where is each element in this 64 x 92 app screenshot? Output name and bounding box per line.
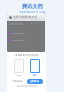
staticText: 立即导出: [30, 80, 40, 83]
staticText: PDF: [17, 74, 22, 77]
staticText: 全新升级版本正式: [13, 15, 37, 19]
button[interactable]: 稍后再说: [10, 79, 25, 84]
staticText: 导出后可以分享给好友: [17, 85, 37, 88]
staticText: 腾讯文档: [22, 3, 43, 10]
staticText: 稍后再说: [13, 80, 23, 83]
button[interactable]: 立即导出: [27, 79, 43, 84]
staticText: 请选择导出的文件格式: [15, 54, 39, 57]
staticText: 图片: [33, 74, 38, 77]
button[interactable]: [30, 59, 40, 73]
staticText: 全新升级版本正式上线啦: [19, 11, 46, 14]
button[interactable]: [14, 59, 24, 73]
